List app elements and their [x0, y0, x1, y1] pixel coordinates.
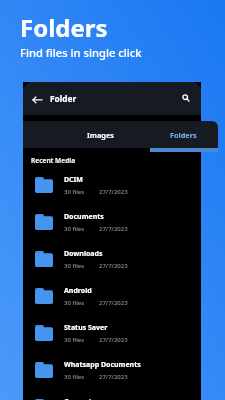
staticText: Folders: [20, 11, 108, 44]
staticText: Recent Media: [31, 156, 76, 165]
staticText: 27/7/2023: [99, 373, 128, 381]
staticText: Find files in single click: [20, 45, 142, 60]
staticText: 27/7/2023: [99, 262, 128, 270]
button[interactable]: Status Saver: [23, 322, 201, 359]
staticText: 27/7/2023: [99, 188, 128, 196]
button[interactable]: Folders: [142, 121, 224, 148]
staticText: Status Saver: [64, 323, 108, 333]
staticText: Folder: [50, 93, 77, 104]
staticText: Folders: [170, 130, 197, 140]
staticText: Images: [87, 130, 114, 140]
staticText: Computer: [64, 397, 100, 400]
button[interactable]: Computer: [23, 396, 201, 400]
button[interactable]: Search: [175, 87, 197, 109]
staticText: 27/7/2023: [99, 225, 128, 233]
button[interactable]: Documents: [23, 211, 201, 248]
staticText: DCIM: [64, 175, 83, 185]
staticText: 27/7/2023: [99, 336, 128, 344]
button[interactable]: Whatsapp Documents: [23, 359, 201, 396]
staticText: Whatsapp Documents: [64, 360, 141, 370]
staticText: 30 files: [64, 336, 85, 344]
staticText: 30 files: [64, 225, 85, 233]
button[interactable]: Downloads: [23, 248, 201, 285]
staticText: Documents: [64, 212, 104, 222]
staticText: Downloads: [64, 249, 103, 259]
staticText: 30 files: [64, 299, 85, 307]
staticText: 30 files: [64, 373, 85, 381]
button[interactable]: Android: [23, 285, 201, 322]
button[interactable]: Back: [27, 87, 51, 111]
staticText: Android: [64, 286, 92, 296]
staticText: 30 files: [64, 262, 85, 270]
staticText: 30 files: [64, 188, 85, 196]
staticText: 27/7/2023: [99, 299, 128, 307]
button[interactable]: DCIM: [23, 174, 201, 211]
button[interactable]: Images: [58, 121, 142, 148]
